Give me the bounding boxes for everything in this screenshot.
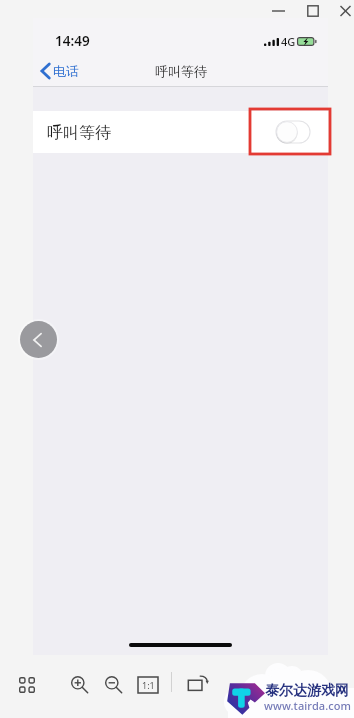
button[interactable]: Zoom in	[68, 673, 91, 696]
button[interactable]: Actual size	[136, 673, 160, 697]
staticText: 呼叫等待	[155, 63, 207, 79]
staticText: 电话	[53, 63, 79, 79]
staticText: 14:49	[55, 32, 90, 50]
button[interactable]: Back	[18, 319, 59, 360]
button[interactable]: Close	[333, 0, 354, 21]
staticText: www.tairda.com	[264, 698, 352, 713]
button[interactable]: Grid view	[15, 673, 39, 697]
button[interactable]: 呼叫等待	[33, 111, 328, 153]
button[interactable]: Call waiting toggle	[276, 121, 310, 143]
button[interactable]: Zoom out	[102, 673, 125, 696]
staticText: 1:1	[142, 679, 155, 691]
staticText: 4G	[281, 34, 296, 49]
button[interactable]: 电话	[33, 61, 87, 81]
button[interactable]: Rotate	[186, 672, 210, 696]
button[interactable]: Maximize	[297, 0, 329, 21]
button[interactable]: Minimize	[262, 0, 295, 21]
staticText: 泰尔达游戏网	[265, 682, 349, 700]
staticText: 呼叫等待	[47, 123, 111, 143]
